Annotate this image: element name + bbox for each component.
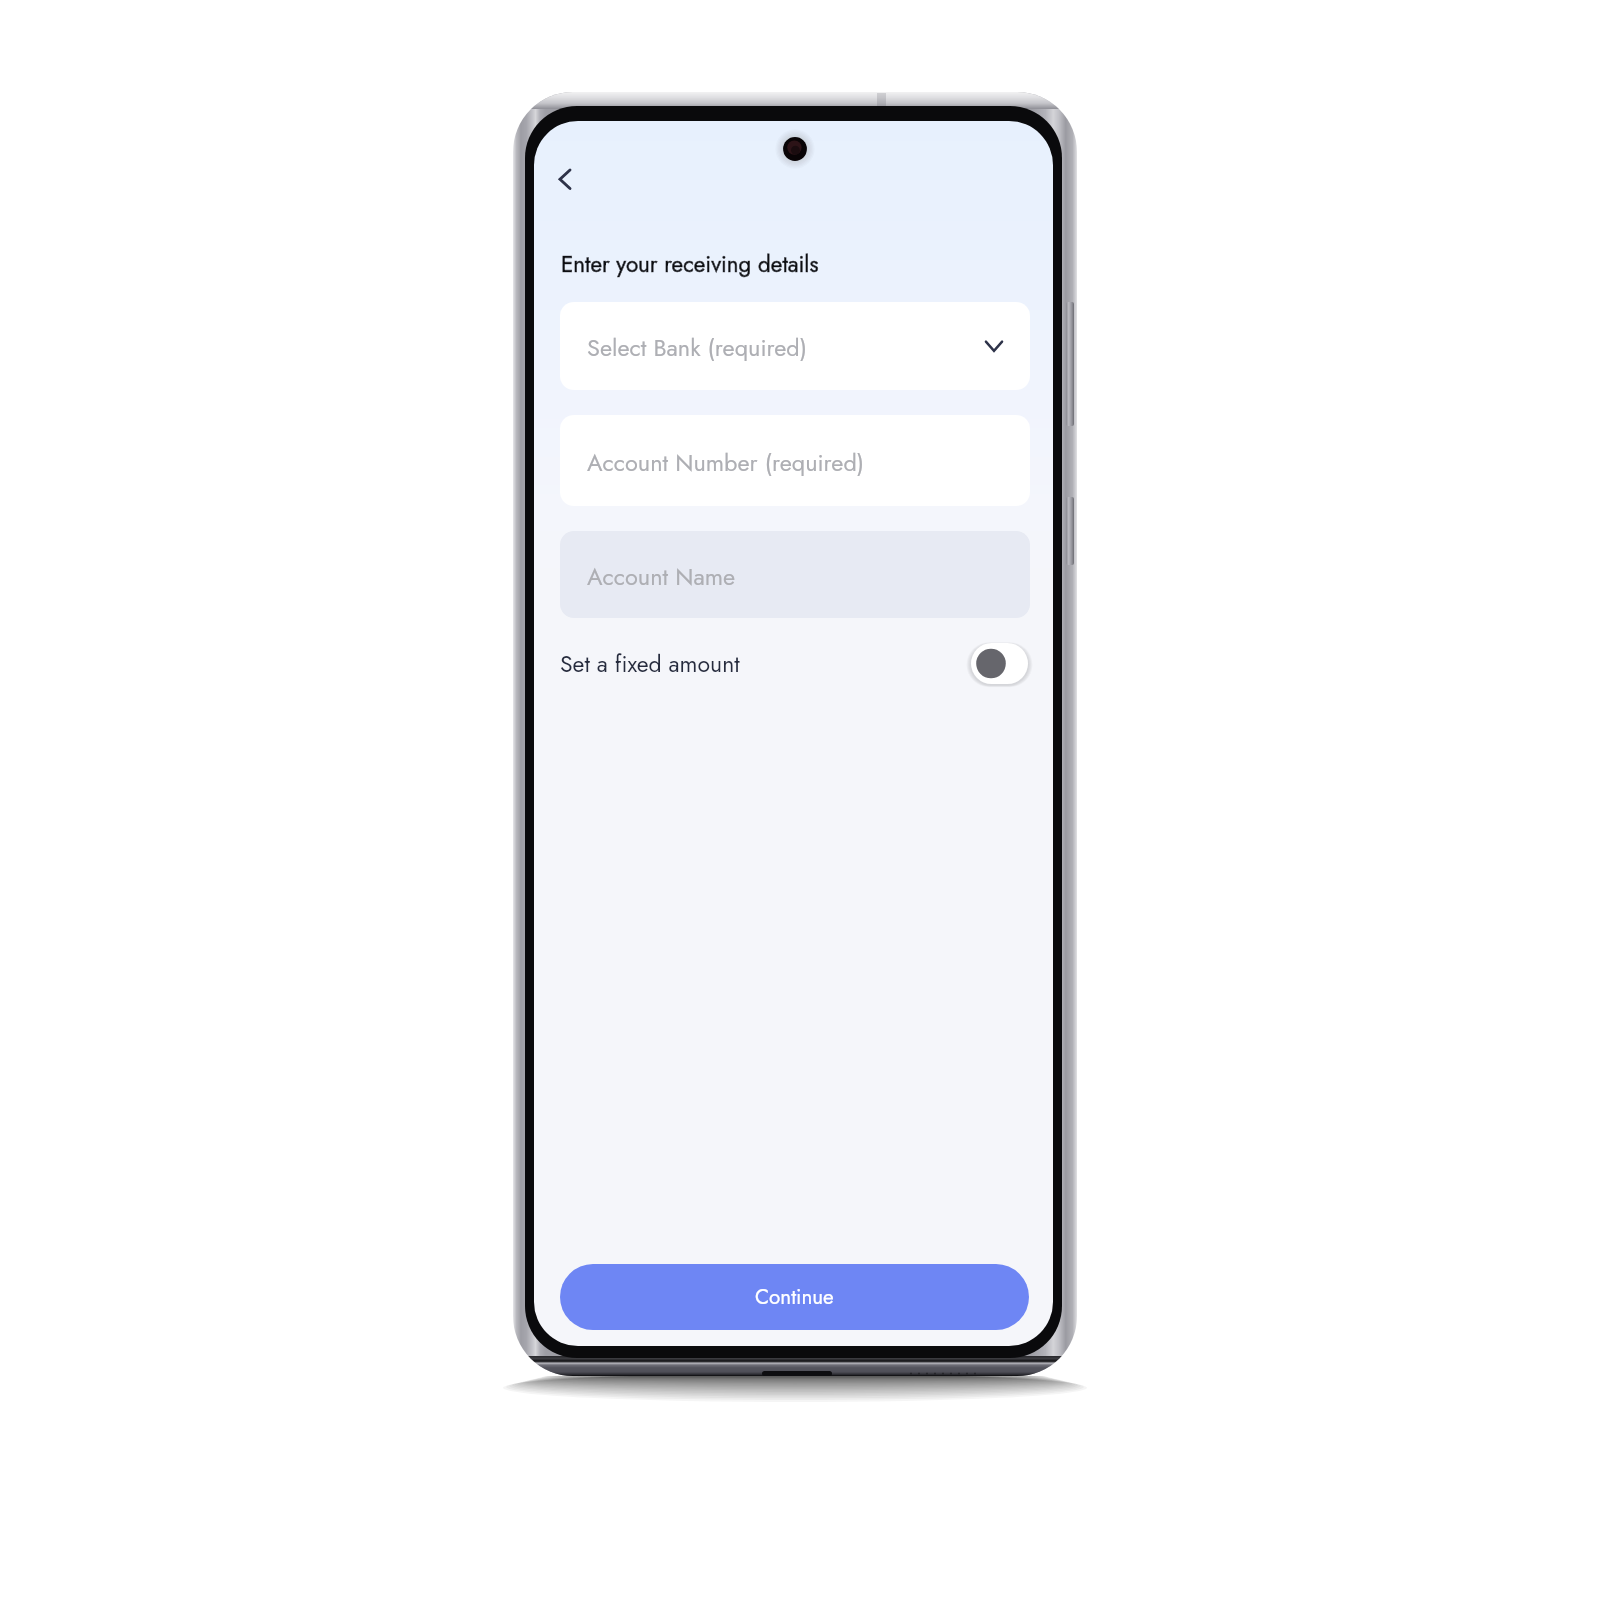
staticText: Account Number (required) xyxy=(587,446,865,480)
staticText: Enter your receiving details xyxy=(561,248,819,280)
staticText: Set a fixed amount xyxy=(560,647,740,680)
button[interactable]: Continue xyxy=(560,1264,1029,1330)
button[interactable]: Set a fixed amount toggle, off xyxy=(971,643,1028,684)
staticText: Continue xyxy=(755,1282,834,1312)
button[interactable]: Set a fixed amount xyxy=(558,638,1028,688)
staticText: Select Bank (required) xyxy=(587,331,807,365)
button[interactable]: Account Number (required) xyxy=(560,415,1030,506)
staticText: Account Name xyxy=(587,560,736,594)
button[interactable]: Account Name xyxy=(560,531,1030,618)
button[interactable]: Back xyxy=(543,157,587,201)
button[interactable]: Select Bank (required) xyxy=(560,302,1030,390)
staticText: Enter your receiving details xyxy=(561,248,819,280)
